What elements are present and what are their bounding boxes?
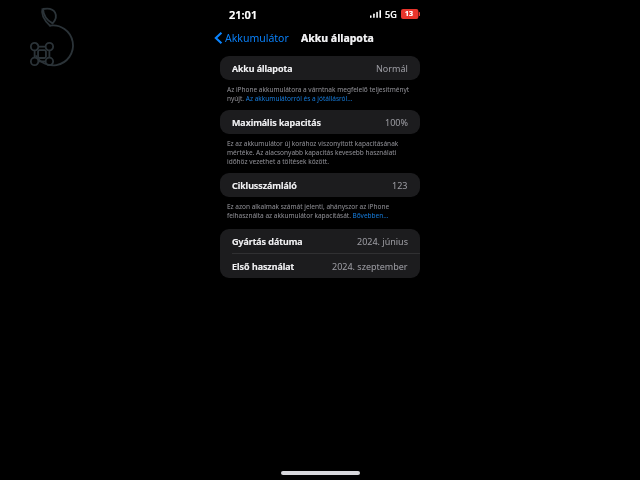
staticText: 123 xyxy=(392,179,408,191)
staticText: Gyártás dátuma xyxy=(232,235,303,247)
button[interactable]: Vissza: Akkumulátor xyxy=(210,29,293,47)
staticText: 5G xyxy=(385,8,397,20)
button[interactable]: Ciklusszámláló xyxy=(220,173,420,197)
button[interactable]: Gyártás dátuma xyxy=(220,229,420,253)
staticText: Normál xyxy=(376,62,408,74)
button[interactable]: Maximális kapacitás xyxy=(220,110,420,134)
staticText: 13 xyxy=(405,9,414,19)
staticText: Akku állapota xyxy=(232,62,293,74)
staticText: 2024. szeptember xyxy=(332,260,408,272)
staticText: Akku állapota xyxy=(301,31,374,45)
staticText: Ez azon alkalmak számát jelenti, ahánysz… xyxy=(227,202,416,220)
staticText: Első használat xyxy=(232,260,295,272)
staticText: 21:01 xyxy=(229,7,258,22)
staticText: 100% xyxy=(385,116,408,128)
staticText: Akkumulátor xyxy=(225,31,289,45)
staticText: Ciklusszámláló xyxy=(232,179,297,191)
staticText: 2024. június xyxy=(357,235,408,247)
staticText: Maximális kapacitás xyxy=(232,116,321,128)
staticText: Ez az akkumulátor új korához viszonyítot… xyxy=(227,139,416,166)
button[interactable]: Akku állapota xyxy=(220,56,420,80)
staticText: Az iPhone akkumulátora a várntnak megfel… xyxy=(227,85,416,103)
button[interactable]: Első használat xyxy=(220,254,420,278)
